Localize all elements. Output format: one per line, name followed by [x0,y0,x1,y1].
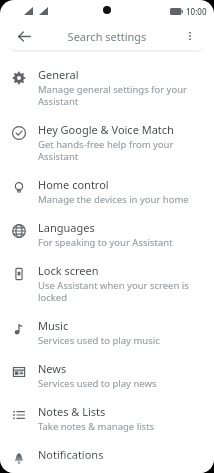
staticText: Get hands-free help from your Assistant [38,138,200,163]
button[interactable]: Home control [0,170,214,213]
staticText: Search settings [38,29,176,44]
staticText: 10:00 [186,6,207,17]
button[interactable]: Languages [0,213,214,256]
staticText: Hey Google & Voice Match [38,122,174,137]
button[interactable]: Hey Google & Voice Match [0,115,214,170]
staticText: Services used to play news [38,377,157,390]
staticText: Lock screen [38,263,99,278]
button[interactable]: General [0,60,214,115]
button[interactable]: Notes & Lists [0,397,214,440]
staticText: General [38,67,79,82]
staticText: Manage the devices in your home [38,193,189,206]
staticText: Take notes & manage lists [38,420,155,433]
staticText: Manage general settings for your Assista… [38,83,200,108]
staticText: Home control [38,177,109,192]
staticText: Notifications [38,447,104,462]
staticText: Music [38,318,69,333]
button[interactable]: Lock screen [0,256,214,311]
staticText: Use Assistant when your screen is locked [38,279,200,304]
staticText: Languages [38,220,95,235]
staticText: Services used to play music [38,334,160,347]
button[interactable]: News [0,354,214,397]
staticText: News [38,361,67,376]
button[interactable]: Notifications [0,440,214,473]
button[interactable]: Back [10,22,38,50]
staticText: Notes & Lists [38,404,106,419]
button[interactable]: More options [176,22,204,50]
button[interactable]: Music [0,311,214,354]
staticText: For speaking to your Assistant [38,236,173,249]
